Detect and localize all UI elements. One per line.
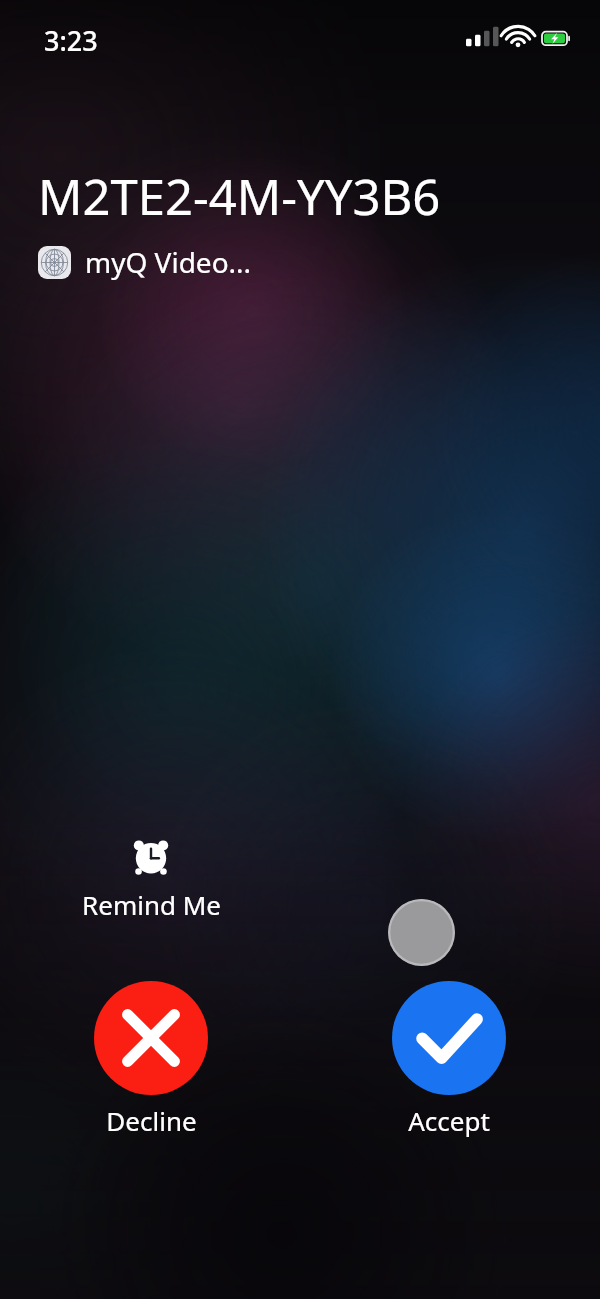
button[interactable]: Remind Me bbox=[81, 826, 221, 930]
button[interactable]: Accept bbox=[384, 981, 514, 1138]
staticText: Accept bbox=[408, 1103, 490, 1138]
staticText: myQ Video... bbox=[85, 243, 252, 281]
button[interactable]: Caller avatar bbox=[388, 899, 455, 966]
staticText: 3:23 bbox=[44, 22, 98, 59]
staticText: Decline bbox=[106, 1103, 197, 1138]
button[interactable]: Decline bbox=[86, 981, 216, 1138]
staticText: Remind Me bbox=[82, 887, 221, 922]
staticText: M2TE2-4M-YY3B6 bbox=[38, 163, 441, 230]
